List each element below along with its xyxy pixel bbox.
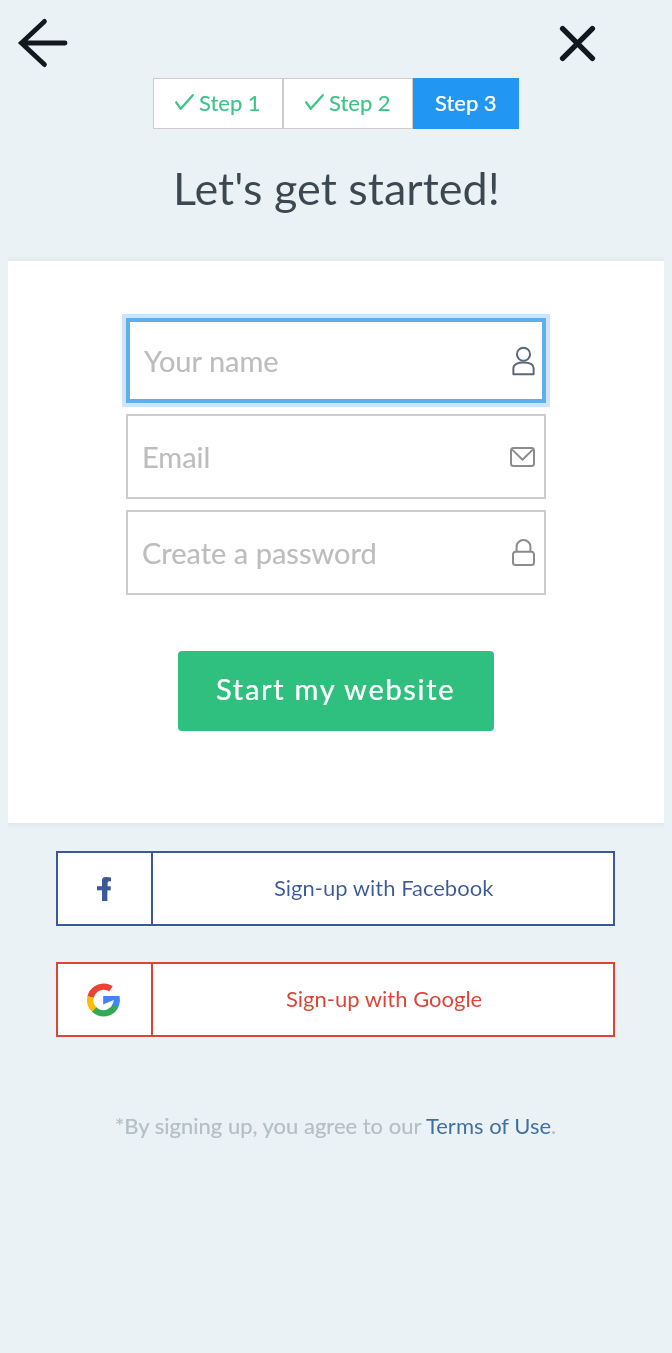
button[interactable]: Step 1: [154, 79, 282, 128]
button[interactable]: Start my website: [178, 651, 494, 731]
button[interactable]: Create a password: [128, 512, 544, 593]
staticText: Sign-up with Facebook: [274, 874, 494, 900]
staticText: Let's get started!: [173, 161, 500, 215]
staticText: Step 3: [435, 89, 497, 115]
staticText: Step 1: [199, 89, 261, 115]
button[interactable]: Email: [128, 416, 544, 497]
staticText: Start my website: [216, 671, 456, 706]
button[interactable]: Sign-up with Google: [56, 962, 615, 1037]
staticText: Your name: [144, 343, 279, 378]
staticText: Sign-up with Google: [286, 985, 483, 1011]
staticText: *By signing up, you agree to our Terms o…: [115, 1112, 557, 1138]
button[interactable]: Back: [7, 7, 79, 79]
button[interactable]: Step 3: [413, 78, 519, 129]
button[interactable]: Close: [541, 7, 613, 79]
staticText: Email: [142, 439, 211, 474]
staticText: Create a password: [142, 535, 377, 570]
button[interactable]: Your name: [130, 322, 542, 399]
staticText: Step 2: [329, 89, 391, 115]
button[interactable]: Sign-up with Facebook: [56, 851, 615, 926]
button[interactable]: Step 2: [284, 79, 412, 128]
